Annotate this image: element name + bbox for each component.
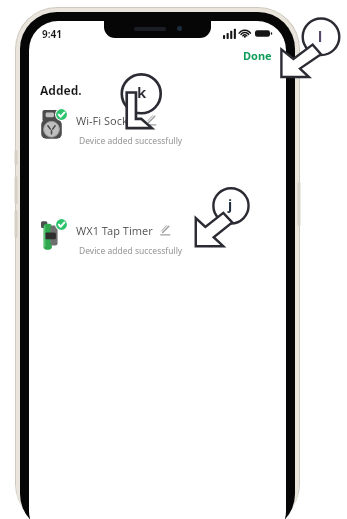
- button[interactable]: Done: [240, 46, 275, 65]
- button[interactable]: Wi-Fi Socket: [29, 107, 286, 147]
- staticText: j: [228, 195, 233, 214]
- staticText: l: [318, 27, 323, 46]
- staticText: Done: [243, 48, 272, 63]
- button[interactable]: WX1 Tap Timer: [29, 217, 286, 257]
- staticText: Device added successfully: [79, 245, 183, 257]
- staticText: 9:41: [42, 27, 62, 41]
- staticText: Device added successfully: [79, 135, 183, 147]
- staticText: WX1 Tap Timer: [76, 223, 153, 238]
- staticText: k: [137, 82, 147, 102]
- button[interactable]: Rename device: [160, 225, 171, 236]
- staticText: Wi-Fi Socket: [76, 113, 139, 128]
- staticText: Added.: [40, 82, 82, 98]
- button[interactable]: Rename device: [146, 115, 157, 126]
